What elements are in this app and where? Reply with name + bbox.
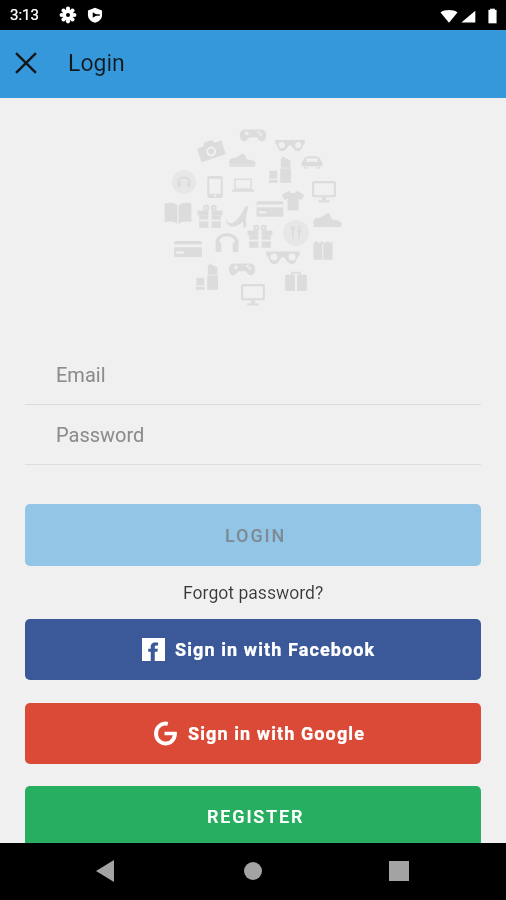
staticText: Password [56, 423, 145, 446]
button[interactable]: Sign in with Google [25, 703, 481, 764]
button[interactable]: Password [25, 423, 481, 465]
staticText: Sign in with Facebook [175, 639, 376, 660]
button[interactable]: Email [25, 363, 481, 405]
staticText: Email [56, 363, 106, 386]
staticText: LOGIN [225, 525, 287, 546]
button[interactable]: Forgot password? [150, 580, 356, 606]
staticText: Forgot password? [183, 583, 324, 604]
button[interactable]: Home [229, 843, 277, 900]
button[interactable]: REGISTER [25, 786, 481, 847]
staticText: REGISTER [207, 806, 305, 827]
staticText: 3:13 [10, 6, 39, 24]
staticText: Sign in with Google [188, 723, 365, 744]
button[interactable]: LOGIN [25, 504, 481, 566]
button[interactable]: Recent apps [375, 843, 423, 900]
button[interactable]: Back [82, 843, 130, 900]
button[interactable]: Sign in with Facebook [25, 619, 481, 680]
button[interactable]: Close [4, 30, 48, 98]
staticText: Login [68, 50, 125, 77]
